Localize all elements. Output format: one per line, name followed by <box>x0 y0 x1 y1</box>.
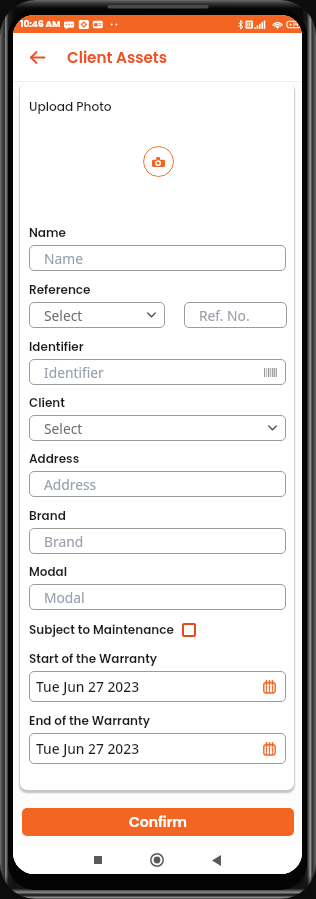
staticText: End of the Warranty <box>29 712 150 729</box>
staticText: Start of the Warranty <box>29 650 158 667</box>
staticText: Client Assets <box>67 47 167 68</box>
button[interactable]: Confirm <box>22 808 294 836</box>
button[interactable]: Modal <box>29 584 286 610</box>
staticText: Client <box>29 394 65 411</box>
staticText: Modal <box>29 563 68 580</box>
button[interactable]: Back <box>19 33 55 82</box>
staticText: Modal <box>44 588 85 607</box>
staticText: Brand <box>44 532 84 551</box>
button[interactable]: Tue Jun 27 2023 <box>29 671 286 702</box>
staticText: Reference <box>29 281 91 298</box>
staticText: Subject to Maintenance <box>29 621 174 638</box>
button[interactable]: Upload photo <box>143 146 174 177</box>
button[interactable]: Ref. No. <box>184 302 287 328</box>
button[interactable]: Identifier <box>29 359 286 385</box>
staticText: Identifier <box>29 338 84 355</box>
staticText: Brand <box>29 507 66 524</box>
button[interactable]: Select <box>29 302 165 328</box>
button[interactable]: Tue Jun 27 2023 <box>29 733 286 764</box>
staticText: Select <box>44 419 83 438</box>
staticText: Name <box>44 249 83 268</box>
staticText: Address <box>29 450 80 467</box>
button[interactable]: Home <box>137 846 177 874</box>
staticText: Name <box>29 224 66 241</box>
button[interactable]: Subject to Maintenance <box>29 621 196 638</box>
staticText: Confirm <box>129 812 187 832</box>
staticText: Address <box>44 475 97 494</box>
button[interactable]: Recent apps <box>78 846 118 874</box>
staticText: Upload Photo <box>29 98 112 115</box>
staticText: 10:46 AM <box>20 18 61 31</box>
button[interactable]: Name <box>29 245 286 271</box>
button[interactable]: Brand <box>29 528 286 554</box>
button[interactable]: Select <box>29 415 286 441</box>
staticText: Identifier <box>44 363 104 382</box>
button[interactable]: Back <box>196 846 236 874</box>
staticText: Ref. No. <box>199 306 250 325</box>
staticText: Tue Jun 27 2023 <box>36 739 140 758</box>
staticText: Select <box>44 306 83 325</box>
button[interactable]: Address <box>29 471 286 497</box>
staticText: Tue Jun 27 2023 <box>36 677 140 696</box>
